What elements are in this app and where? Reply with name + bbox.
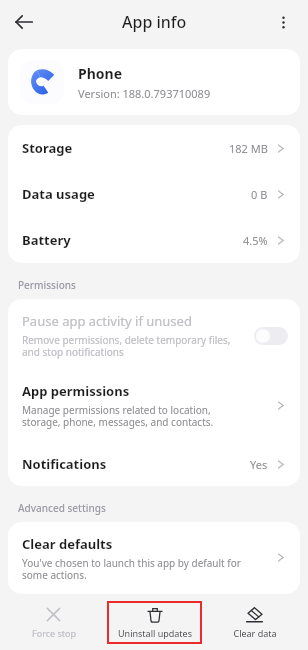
- staticText: Force stop: [32, 627, 76, 639]
- staticText: 0 B: [251, 187, 268, 202]
- staticText: Storage: [22, 139, 229, 157]
- button[interactable]: Notifications: [8, 442, 300, 486]
- staticText: Manage permissions related to location, …: [22, 403, 214, 429]
- staticText: App info: [122, 11, 187, 33]
- button[interactable]: App permissions: [8, 371, 300, 442]
- button[interactable]: Storage: [8, 125, 300, 171]
- staticText: App permissions: [22, 382, 130, 400]
- staticText: Yes: [250, 457, 268, 472]
- staticText: Advanced settings: [18, 501, 106, 515]
- staticText: Notifications: [22, 455, 250, 473]
- staticText: Clear data: [233, 627, 277, 639]
- button[interactable]: Uninstall updates: [107, 601, 202, 644]
- button[interactable]: Clear data: [207, 601, 302, 644]
- staticText: You've chosen to launch this app by defa…: [22, 556, 241, 580]
- staticText: 182 MB: [229, 141, 268, 156]
- staticText: Remove permissions, delete temporary fil…: [22, 333, 231, 359]
- staticText: Data usage: [22, 185, 251, 203]
- staticText: Permissions: [18, 278, 76, 292]
- button[interactable]: Force stop: [6, 601, 101, 644]
- staticText: Battery: [22, 231, 243, 249]
- button[interactable]: Data usage: [8, 171, 300, 217]
- button[interactable]: Battery: [8, 217, 300, 263]
- staticText: Phone: [78, 64, 123, 83]
- staticText: 4.5%: [243, 233, 268, 248]
- staticText: Version: 188.0.793710089: [78, 86, 211, 101]
- staticText: Pause app activity if unused: [22, 312, 192, 330]
- button[interactable]: More options: [266, 5, 300, 39]
- button[interactable]: Back: [7, 5, 41, 39]
- button[interactable]: Pause app activity if unused: [8, 299, 300, 371]
- button[interactable]: Clear defaults: [8, 522, 300, 594]
- staticText: Uninstall updates: [118, 627, 192, 639]
- staticText: Clear defaults: [22, 535, 113, 553]
